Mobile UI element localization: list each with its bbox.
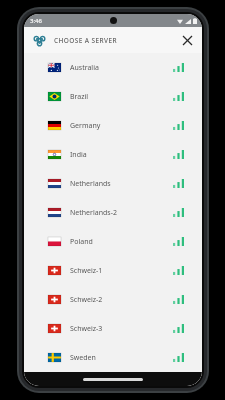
other: Signal strength [173, 179, 184, 188]
other: Signal strength [173, 353, 184, 362]
staticText: Poland [70, 237, 93, 247]
button[interactable]: Brazil [24, 82, 202, 111]
button[interactable]: Singapore [24, 372, 202, 386]
staticText: Schweiz-2 [70, 295, 103, 305]
other: App logo [33, 34, 46, 47]
staticText: Australia [70, 63, 99, 73]
other: Signal strength [173, 324, 184, 333]
button[interactable]: Schweiz-2 [24, 285, 202, 314]
other: Signal strength [173, 92, 184, 101]
button[interactable]: Netherlands-2 [24, 198, 202, 227]
other: Signal strength [173, 208, 184, 217]
button[interactable]: Schweiz-1 [24, 256, 202, 285]
button[interactable]: Netherlands [24, 169, 202, 198]
button[interactable]: Poland [24, 227, 202, 256]
button[interactable]: Sweden [24, 343, 202, 372]
other: Signal strength [173, 295, 184, 304]
other: Signal strength [173, 237, 184, 246]
staticText: 3:46 [30, 17, 42, 25]
button[interactable]: Close [178, 31, 196, 49]
other: Signal strength [173, 63, 184, 72]
button[interactable]: Germany [24, 111, 202, 140]
staticText: Singapore [70, 374, 104, 384]
staticText: Schweiz-1 [70, 266, 103, 276]
staticText: CHOOSE A SERVER [54, 36, 118, 45]
staticText: Schweiz-3 [70, 324, 103, 334]
button[interactable]: India [24, 140, 202, 169]
staticText: Netherlands-2 [70, 208, 117, 218]
staticText: Germany [70, 121, 101, 131]
staticText: Netherlands [70, 179, 111, 189]
staticText: India [70, 150, 87, 160]
other: Signal strength [173, 121, 184, 130]
staticText: Sweden [70, 353, 96, 363]
button[interactable]: Schweiz-3 [24, 314, 202, 343]
other: Signal strength [173, 266, 184, 275]
button[interactable]: Australia [24, 53, 202, 82]
other: Signal strength [173, 150, 184, 159]
staticText: Brazil [70, 92, 89, 102]
